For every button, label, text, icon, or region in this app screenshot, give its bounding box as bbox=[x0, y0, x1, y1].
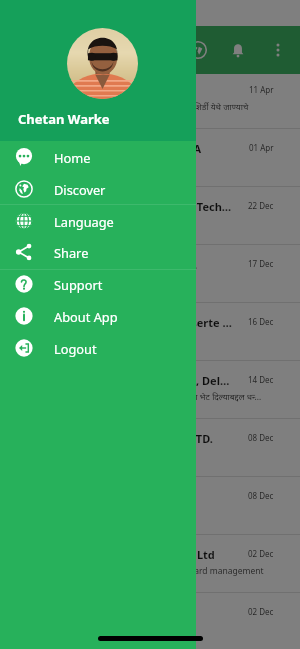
button[interactable]: Share bbox=[0, 236, 196, 268]
staticText: SHRI SAIBABA SANSTHAN TRUST A bbox=[14, 141, 233, 156]
staticText: We are specialists in grape farming and … bbox=[14, 565, 265, 577]
button[interactable]: Mahatma Phule Krushi Vidyapith. bbox=[0, 245, 300, 302]
staticText: AGRO INDIA PRIVATE COMPANY LTD. bbox=[14, 431, 233, 446]
staticText: आज आपल्या कार्यालयात भेट दिल्याबद्दल धन्… bbox=[14, 101, 265, 113]
staticText: Shree Mangal Karyalay Mandap bbox=[14, 83, 233, 98]
staticText: Share bbox=[54, 244, 89, 261]
staticText: 22 Dec bbox=[248, 200, 274, 211]
button[interactable]: Krishi Bhavan Agro Sansthan Ltd., Delhi … bbox=[0, 361, 300, 418]
staticText: Krishi Bhavan Agro Sansthan Ltd., Delhi … bbox=[14, 373, 233, 388]
button[interactable]: Notifications bbox=[218, 30, 258, 70]
button[interactable]: Support bbox=[0, 268, 196, 300]
staticText: Support bbox=[54, 276, 103, 293]
staticText: 02 Dec bbox=[248, 606, 274, 617]
staticText: About App bbox=[54, 308, 118, 325]
button[interactable]: Language bbox=[0, 205, 196, 237]
staticText: 08 Dec bbox=[248, 490, 274, 501]
staticText: 17 Dec bbox=[248, 258, 274, 269]
button[interactable]: Home bbox=[0, 141, 196, 173]
button[interactable]: More options bbox=[258, 30, 298, 70]
staticText: Mahatma Phule Krushi Vidyapith. bbox=[14, 257, 233, 272]
button[interactable]: AGRO INDIA PRIVATE COMPANY LTD. bbox=[0, 419, 300, 476]
staticText: 14 Dec bbox=[248, 374, 274, 385]
staticText: 16 Dec bbox=[248, 316, 274, 327]
button[interactable]: About App bbox=[0, 300, 196, 332]
button[interactable]: Shree Mangal Karyalay Mandap bbox=[0, 71, 300, 128]
staticText: आमच्या कार्यालयाला आपण सहकुटुंब सपरिवार … bbox=[14, 391, 265, 403]
staticText: 08 Dec bbox=[248, 432, 274, 443]
button[interactable]: Logout bbox=[0, 332, 196, 364]
button[interactable]: SHRI SAIBABA SANSTHAN TRUST A bbox=[0, 129, 300, 186]
button[interactable]: Sahyadri Farms and Vineyard Pvt Ltd bbox=[0, 535, 300, 592]
staticText: Home bbox=[54, 149, 91, 166]
button[interactable]: 02 Dec bbox=[0, 593, 300, 646]
staticText: Language bbox=[54, 213, 114, 230]
staticText: 02 Dec bbox=[248, 548, 274, 559]
staticText: Discover bbox=[54, 181, 106, 198]
staticText: Maharashtra Rajya Krushi Udyog Tech Pvt … bbox=[14, 199, 233, 214]
button[interactable]: Language bbox=[178, 30, 218, 70]
staticText: 11 Apr bbox=[249, 84, 274, 95]
staticText bbox=[14, 489, 233, 504]
staticText: Shivneri Krushi Udyog Samuh Laserte Indu… bbox=[14, 315, 233, 330]
staticText: Chetan Warke bbox=[18, 110, 110, 128]
button[interactable]: Discover bbox=[0, 173, 196, 205]
button[interactable]: Maharashtra Rajya Krushi Udyog Tech Pvt … bbox=[0, 187, 300, 244]
staticText: Sahyadri Farms and Vineyard Pvt Ltd bbox=[14, 547, 233, 562]
button[interactable]: Shivneri Krushi Udyog Samuh Laserte Indu… bbox=[0, 303, 300, 360]
button[interactable]: 08 Dec bbox=[0, 477, 300, 534]
staticText: Logout bbox=[54, 340, 97, 357]
staticText: 01 Apr bbox=[249, 142, 274, 153]
staticText bbox=[14, 605, 233, 620]
